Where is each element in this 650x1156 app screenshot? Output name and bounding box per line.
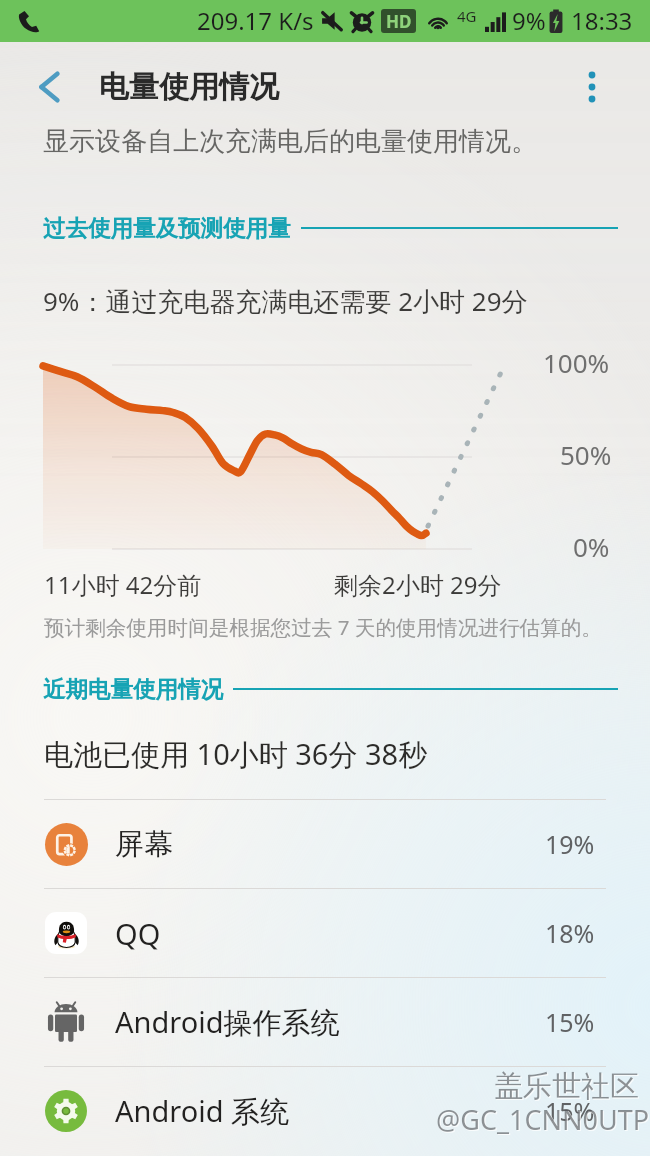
staticText: 9%	[512, 4, 546, 37]
staticText: 19%	[545, 827, 595, 861]
staticText: 18%	[545, 916, 595, 950]
staticText: 盖乐世社区	[494, 1068, 639, 1105]
staticText: 18:33	[571, 4, 633, 37]
staticText: 0%	[573, 529, 610, 564]
button[interactable]: Android操作系统	[0, 978, 650, 1066]
staticText: 电池已使用 10小时 36分 38秒	[44, 734, 428, 774]
staticText: 11小时 42分前	[44, 568, 202, 601]
staticText: QQ	[115, 914, 161, 953]
staticText: 显示设备自上次充满电后的电量使用情况。	[43, 125, 537, 158]
staticText: 209.17 K/s	[197, 4, 314, 37]
button[interactable]: Back	[26, 66, 72, 108]
staticText: 盖乐世社区	[495, 1069, 640, 1106]
staticText: 预计剩余使用时间是根据您过去 7 天的使用情况进行估算的。	[44, 613, 602, 641]
staticText: 屏幕	[115, 826, 173, 863]
staticText: 近期电量使用情况	[43, 675, 223, 703]
staticText: 15%	[545, 1005, 595, 1039]
button[interactable]: 屏幕	[0, 800, 650, 888]
staticText: @GC_1CNN0UTP	[436, 1101, 650, 1138]
button[interactable]: Android 系统	[0, 1067, 650, 1155]
staticText: 9%：通过充电器充满电还需要 2小时 29分	[43, 283, 528, 319]
staticText: 过去使用量及预测使用量	[43, 214, 291, 242]
staticText: Android 系统	[115, 1091, 290, 1131]
staticText: @GC_1CNN0UTP	[437, 1102, 650, 1139]
staticText: 4G	[457, 6, 477, 26]
staticText: 100%	[543, 345, 610, 380]
staticText: Android操作系统	[115, 1002, 340, 1042]
staticText: 15%	[545, 1094, 595, 1128]
staticText: 电量使用情况	[99, 68, 279, 106]
staticText: 剩余2小时 29分	[334, 568, 502, 601]
button[interactable]: QQ	[0, 889, 650, 977]
staticText: 50%	[560, 437, 612, 472]
button[interactable]: More options	[570, 66, 614, 108]
staticText: HD	[386, 10, 412, 33]
